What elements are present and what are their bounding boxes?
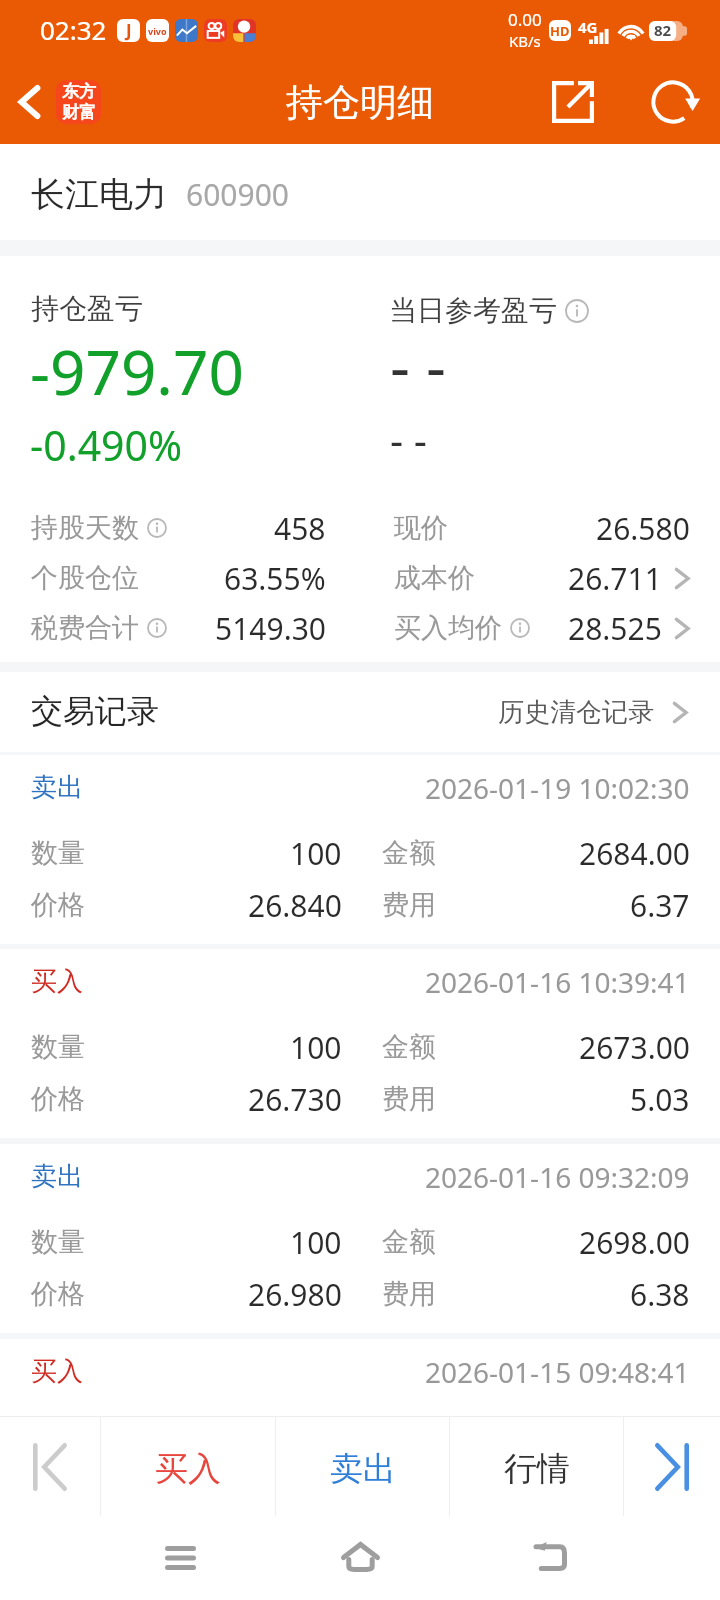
- staticText: -979.70: [30, 329, 244, 413]
- staticText: 价格: [31, 1082, 85, 1116]
- staticText: 买入: [31, 1355, 83, 1388]
- staticText: 100: [290, 1027, 342, 1068]
- button[interactable]: 行情: [450, 1417, 623, 1516]
- staticText: 63.55%: [224, 558, 326, 599]
- staticText: 6.37: [630, 885, 690, 926]
- staticText: 2698.00: [579, 1222, 690, 1263]
- button[interactable]: 卖出: [276, 1417, 449, 1516]
- staticText: 个股仓位: [31, 561, 139, 595]
- staticText: 税费合计: [31, 611, 139, 645]
- button[interactable]: Back: [508, 1516, 592, 1600]
- staticText: 行情: [504, 1448, 570, 1490]
- staticText: 26.840: [248, 885, 342, 926]
- staticText: 持仓盈亏: [31, 291, 143, 326]
- staticText: 02:32: [40, 12, 107, 47]
- staticText: 卖出: [330, 1448, 396, 1490]
- button[interactable]: 买入: [101, 1417, 275, 1516]
- staticText: 买入: [31, 965, 83, 998]
- staticText: 600900: [186, 174, 289, 215]
- staticText: 2673.00: [579, 1027, 690, 1068]
- staticText: 数量: [31, 1030, 85, 1064]
- staticText: 长江电力: [31, 173, 167, 216]
- staticText: 2026-01-16 09:32:09: [425, 1158, 690, 1196]
- staticText: 财富: [62, 102, 96, 123]
- button[interactable]: 卖出: [0, 1144, 720, 1216]
- staticText: 2026-01-16 10:39:41: [425, 963, 690, 1001]
- staticText: 5.03: [630, 1079, 690, 1120]
- staticText: 6.38: [630, 1274, 690, 1315]
- button[interactable]: 卖出: [0, 755, 720, 827]
- staticText: 成本价: [394, 561, 475, 595]
- staticText: 2026-01-19 10:02:30: [425, 769, 690, 807]
- staticText: J: [126, 19, 132, 42]
- button[interactable]: 买入: [0, 1339, 720, 1411]
- staticText: 卖出: [31, 1160, 83, 1193]
- staticText: 2684.00: [579, 833, 690, 874]
- button[interactable]: Recent apps: [138, 1516, 222, 1600]
- button[interactable]: First page: [0, 1417, 100, 1516]
- staticText: 价格: [31, 1277, 85, 1311]
- staticText: 交易记录: [31, 691, 159, 731]
- button[interactable]: 买入均价: [358, 603, 720, 653]
- button[interactable]: Share: [531, 60, 615, 144]
- staticText: 现价: [394, 511, 448, 545]
- staticText: 费用: [382, 1082, 436, 1116]
- button[interactable]: 成本价: [358, 553, 720, 603]
- staticText: 26.580: [596, 508, 690, 549]
- button[interactable]: Back: [0, 80, 111, 124]
- staticText: vivo: [148, 25, 167, 37]
- staticText: 100: [290, 833, 342, 874]
- staticText: 买入均价: [394, 611, 502, 645]
- staticText: 持仓明细: [286, 79, 434, 126]
- button[interactable]: 历史清仓记录: [498, 696, 720, 729]
- staticText: 数量: [31, 1225, 85, 1259]
- staticText: 买入: [155, 1448, 221, 1490]
- staticText: 历史清仓记录: [498, 696, 654, 729]
- staticText: - -: [390, 323, 447, 407]
- staticText: 当日参考盈亏: [389, 293, 557, 328]
- staticText: 26.980: [248, 1274, 342, 1315]
- staticText: 100: [290, 1222, 342, 1263]
- staticText: 数量: [31, 836, 85, 870]
- button[interactable]: Refresh: [632, 60, 716, 144]
- staticText: 价格: [31, 888, 85, 922]
- staticText: 金额: [382, 1030, 436, 1064]
- staticText: 26.730: [248, 1079, 342, 1120]
- staticText: KB/s: [509, 31, 541, 51]
- staticText: 4G: [578, 17, 598, 37]
- staticText: 28.525: [568, 608, 662, 649]
- staticText: 持股天数: [31, 511, 139, 545]
- staticText: -0.490%: [30, 417, 183, 473]
- staticText: 东方: [62, 81, 96, 102]
- staticText: 金额: [382, 1225, 436, 1259]
- button[interactable]: 买入: [0, 949, 720, 1021]
- staticText: 费用: [382, 1277, 436, 1311]
- staticText: 2026-01-15 09:48:41: [425, 1353, 690, 1391]
- staticText: 0.00: [508, 8, 542, 31]
- button[interactable]: Home: [318, 1516, 402, 1600]
- staticText: 金额: [382, 836, 436, 870]
- staticText: 卖出: [31, 771, 83, 804]
- staticText: 458: [274, 508, 326, 549]
- staticText: HD: [550, 22, 570, 40]
- staticText: 82: [654, 20, 672, 40]
- staticText: 26.711: [568, 558, 662, 599]
- staticText: - -: [390, 412, 428, 468]
- staticText: 费用: [382, 888, 436, 922]
- button[interactable]: Last page: [624, 1417, 720, 1516]
- staticText: 5149.30: [215, 608, 326, 649]
